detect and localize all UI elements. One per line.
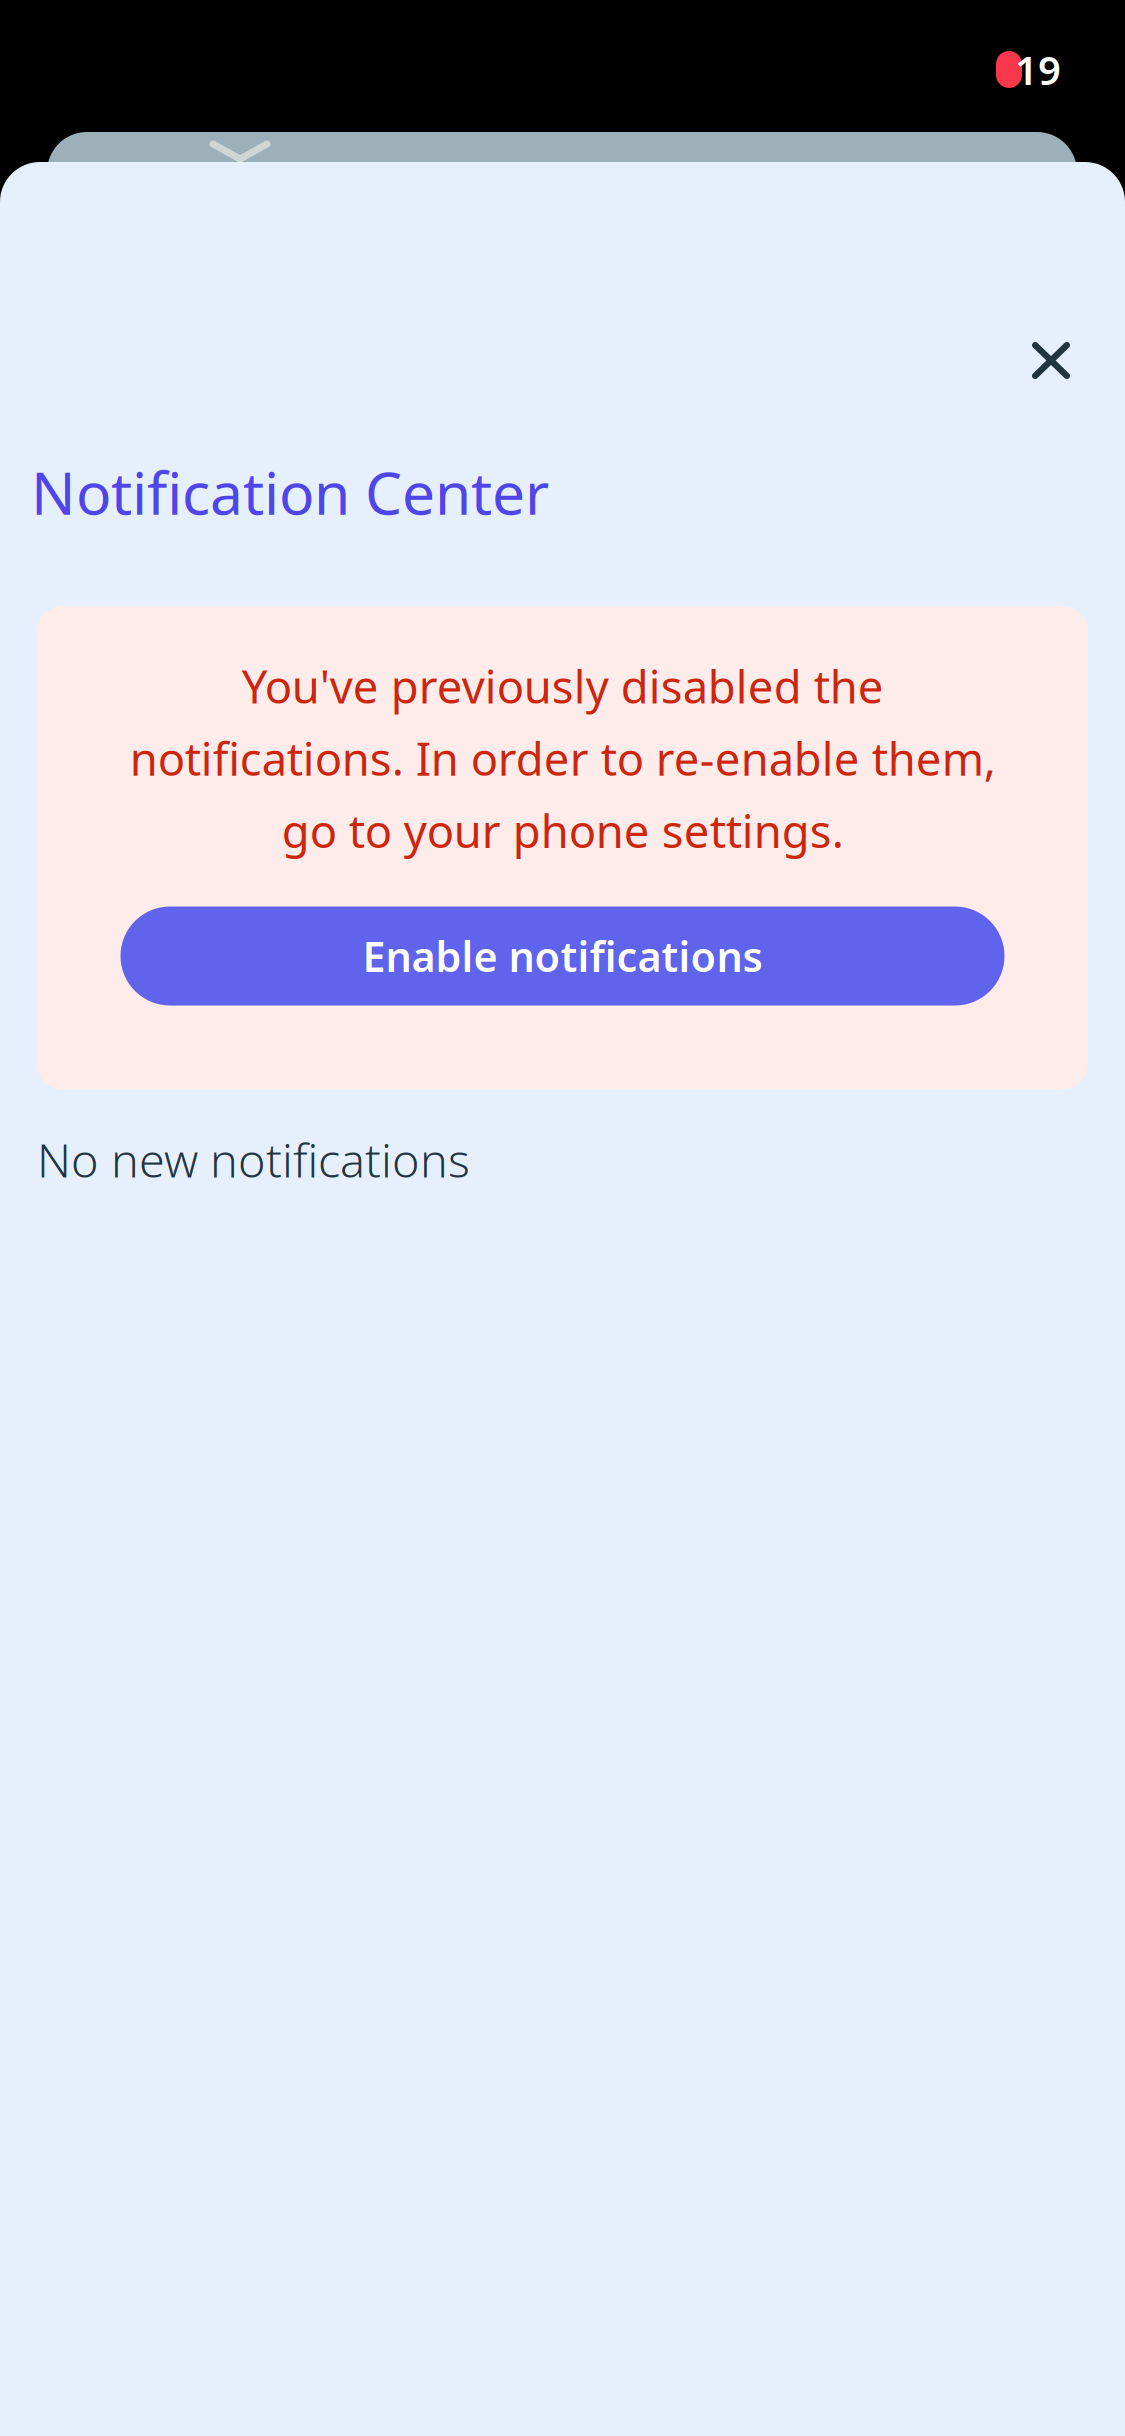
staticText: Notification Center [31, 453, 549, 531]
staticText: Enable notifications [362, 929, 762, 983]
staticText: You've previously disabled the notificat… [129, 656, 995, 860]
staticText: No new notifications [37, 1128, 470, 1190]
button[interactable]: Enable notifications [120, 906, 1004, 1005]
staticText: 19 [1015, 43, 1061, 96]
button[interactable]: Close [1004, 314, 1125, 407]
